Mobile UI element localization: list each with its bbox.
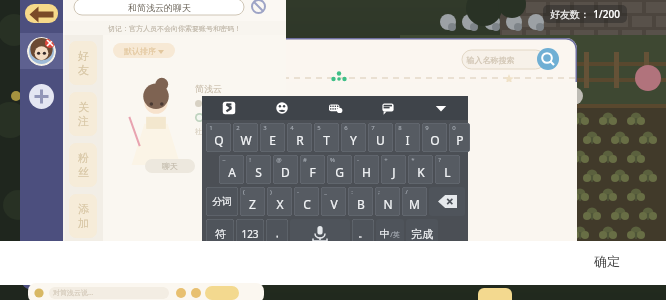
button[interactable] — [175, 287, 187, 299]
button[interactable]: 对简浅云说… — [49, 287, 169, 299]
button[interactable]: : — [348, 187, 373, 216]
button[interactable]: Delete — [429, 187, 465, 216]
staticText: 5 — [317, 124, 321, 132]
staticText: 默认排序 — [124, 46, 156, 56]
staticText: ! — [249, 156, 251, 164]
staticText: P — [456, 132, 464, 148]
button[interactable]: Block — [250, 0, 267, 15]
button[interactable]: 添 — [69, 194, 97, 238]
button[interactable]: ) — [267, 187, 292, 216]
staticText: : — [351, 188, 353, 196]
staticText: / — [405, 188, 408, 196]
button[interactable]: ( — [240, 187, 265, 216]
button[interactable]: 0 — [449, 123, 470, 152]
button[interactable]: ? — [435, 155, 460, 184]
button[interactable]: _ — [321, 187, 346, 216]
button[interactable]: 2 — [233, 123, 258, 152]
staticText: 4 — [290, 124, 294, 132]
staticText: ~ — [222, 156, 226, 164]
button[interactable]: 8 — [395, 123, 420, 152]
staticText: 丝 — [78, 165, 89, 179]
button[interactable]: - — [354, 155, 379, 184]
staticText: D — [281, 164, 290, 180]
staticText: /英 — [390, 230, 400, 240]
button[interactable]: 123 — [236, 219, 264, 248]
button[interactable]: ~ — [219, 155, 244, 184]
button[interactable]: 默认排序 — [113, 43, 175, 58]
button[interactable]: Voice input and space — [290, 219, 350, 248]
button[interactable]: 完成 — [406, 219, 438, 248]
staticText: 聊天 — [162, 161, 178, 171]
button[interactable]: 分词 — [206, 187, 238, 216]
button[interactable]: ; — [375, 187, 400, 216]
button[interactable]: 输入名称搜索 — [462, 50, 545, 69]
button[interactable]: 符 — [206, 219, 234, 248]
button[interactable]: 。 — [352, 219, 374, 248]
button[interactable]: / — [402, 187, 427, 216]
staticText: 关 — [78, 100, 89, 114]
staticText: 7 — [371, 124, 375, 132]
button[interactable]: 好 — [69, 41, 97, 85]
button[interactable]: 1 — [206, 123, 231, 152]
button[interactable]: - — [294, 187, 319, 216]
staticText: 符 — [215, 227, 226, 241]
button[interactable]: Emoji — [255, 96, 308, 120]
button[interactable]: Add — [29, 84, 54, 109]
staticText: X — [276, 196, 284, 212]
staticText: 注 — [78, 114, 89, 128]
staticText: 好 — [78, 49, 89, 63]
button[interactable]: 粉 — [69, 143, 97, 187]
staticText: ? — [438, 156, 441, 164]
staticText: 1 — [209, 124, 213, 132]
button[interactable]: Keyboard settings — [308, 96, 361, 120]
button[interactable]: ， — [266, 219, 288, 248]
button[interactable]: 好友数： — [543, 5, 627, 23]
button[interactable]: 关 — [69, 92, 97, 136]
staticText: G — [335, 164, 344, 180]
staticText: Y — [350, 132, 357, 148]
button[interactable]: Messages — [361, 96, 414, 120]
staticText: ( — [243, 188, 245, 196]
button[interactable]: + — [381, 155, 406, 184]
button[interactable] — [190, 287, 202, 299]
staticText: E — [269, 132, 276, 148]
button[interactable]: 7 — [368, 123, 393, 152]
staticText: ; — [378, 188, 380, 196]
staticText: L — [444, 164, 451, 180]
staticText: C — [303, 196, 311, 212]
staticText: 9 — [425, 124, 429, 132]
button[interactable]: ! — [246, 155, 271, 184]
staticText: 输入名称搜索 — [462, 54, 515, 65]
staticText: R — [296, 132, 304, 148]
button[interactable]: 确定 — [588, 249, 626, 273]
staticText: @ — [276, 156, 282, 164]
staticText: ) — [270, 188, 272, 196]
button[interactable] — [478, 288, 512, 300]
button[interactable]: 聊天 — [145, 159, 195, 173]
staticText: 3 — [263, 124, 267, 132]
staticText: 6 — [344, 124, 348, 132]
button[interactable]: 6 — [341, 123, 366, 152]
staticText: 8 — [398, 124, 402, 132]
button[interactable]: Back — [25, 4, 58, 23]
button[interactable]: Profile — [27, 37, 56, 66]
button[interactable]: # — [300, 155, 325, 184]
button[interactable]: % — [327, 155, 352, 184]
button[interactable]: 5 — [314, 123, 339, 152]
staticText: I — [405, 132, 410, 148]
staticText: + — [384, 156, 388, 164]
staticText: A — [228, 164, 236, 180]
button[interactable]: @ — [273, 155, 298, 184]
button[interactable]: 3 — [260, 123, 285, 152]
button[interactable]: 中 — [376, 219, 404, 248]
button[interactable]: Search — [537, 48, 559, 70]
button[interactable] — [205, 286, 239, 300]
staticText: % — [330, 156, 335, 164]
button[interactable]: 4 — [287, 123, 312, 152]
button[interactable]: 9 — [422, 123, 447, 152]
staticText: 2 — [236, 124, 240, 132]
button[interactable]: Hide keyboard — [414, 96, 467, 120]
button[interactable]: Sogou input — [202, 96, 255, 120]
button[interactable]: * — [408, 155, 433, 184]
